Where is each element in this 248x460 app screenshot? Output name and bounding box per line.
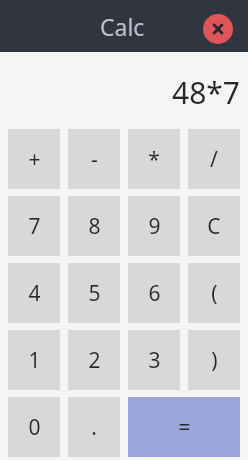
button[interactable]: - [68, 129, 120, 189]
button[interactable]: ( [188, 263, 240, 323]
button[interactable]: 3 [128, 330, 180, 390]
staticText: 7 [28, 212, 41, 241]
button[interactable]: 7 [8, 196, 60, 256]
staticText: 48*7 [171, 72, 240, 113]
staticText: ( [211, 279, 218, 308]
button[interactable]: + [8, 129, 60, 189]
button[interactable]: 2 [68, 330, 120, 390]
staticText: 5 [88, 279, 101, 308]
button[interactable]: 5 [68, 263, 120, 323]
button[interactable]: ) [188, 330, 240, 390]
staticText: C [207, 212, 221, 241]
staticText: 2 [88, 346, 101, 375]
staticText: 4 [28, 279, 41, 308]
staticText: 9 [148, 212, 161, 241]
staticText: 3 [148, 346, 161, 375]
button[interactable]: / [188, 129, 240, 189]
staticText: / [210, 145, 218, 174]
button[interactable]: 1 [8, 330, 60, 390]
staticText: + [28, 145, 41, 174]
button[interactable]: 6 [128, 263, 180, 323]
button[interactable]: C [188, 196, 240, 256]
staticText: 0 [28, 413, 41, 442]
button[interactable]: Close [203, 14, 233, 44]
button[interactable]: 0 [8, 397, 60, 457]
button[interactable]: . [68, 397, 120, 457]
button[interactable]: = [128, 397, 240, 457]
staticText: 8 [88, 212, 101, 241]
staticText: 1 [28, 346, 41, 375]
staticText: - [91, 145, 98, 174]
button[interactable]: 4 [8, 263, 60, 323]
staticText: . [91, 413, 97, 442]
staticText: Calc [100, 11, 145, 42]
button[interactable]: 9 [128, 196, 180, 256]
staticText: = [178, 413, 191, 442]
staticText: ) [211, 346, 218, 375]
button[interactable]: * [128, 129, 180, 189]
button[interactable]: 8 [68, 196, 120, 256]
staticText: * [148, 145, 160, 174]
staticText: 6 [148, 279, 161, 308]
